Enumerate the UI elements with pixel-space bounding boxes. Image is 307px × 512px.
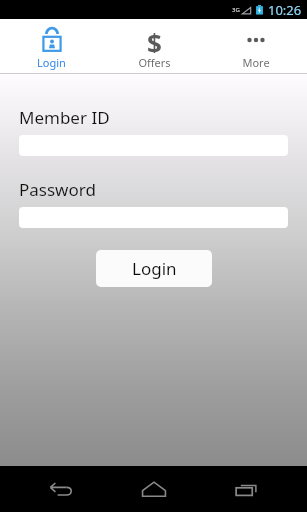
staticText: Login [132,257,177,280]
staticText: $ [147,26,162,53]
staticText: Login [37,55,66,70]
staticText: Member ID [19,106,110,129]
button[interactable]: More [205,19,307,73]
staticText: 10:26 [268,1,302,19]
button[interactable]: Login [0,19,103,73]
staticText: 3G [232,6,240,14]
staticText: Offers [138,55,171,70]
button[interactable]: Back [29,466,93,512]
button[interactable]: Login [96,250,212,287]
button[interactable]: Recent apps [214,466,278,512]
button[interactable]: Home [122,466,186,512]
button[interactable]: $ [103,19,205,73]
staticText: More [242,55,270,70]
staticText: Password [19,178,96,201]
